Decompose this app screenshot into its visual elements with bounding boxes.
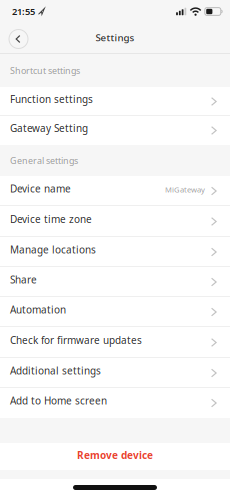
- staticText: Add to Home screen: [10, 394, 107, 407]
- button[interactable]: Function settings: [0, 87, 230, 116]
- button[interactable]: Back: [8, 28, 29, 49]
- button[interactable]: Manage locations: [0, 237, 230, 267]
- button[interactable]: Automation: [0, 297, 230, 327]
- staticText: Additional settings: [10, 364, 101, 377]
- staticText: Device time zone: [10, 212, 92, 226]
- staticText: 21:55: [12, 5, 35, 18]
- staticText: Remove device: [77, 448, 153, 462]
- button[interactable]: Check for firmware updates: [0, 327, 230, 358]
- button[interactable]: Gateway Setting: [0, 116, 230, 145]
- staticText: Settings: [95, 31, 134, 44]
- staticText: MiGateway: [165, 184, 205, 195]
- staticText: Check for firmware updates: [10, 333, 142, 347]
- staticText: Automation: [10, 303, 66, 316]
- staticText: Function settings: [10, 92, 93, 106]
- staticText: Share: [10, 273, 37, 286]
- staticText: Manage locations: [10, 243, 96, 256]
- button[interactable]: Device time zone: [0, 206, 230, 237]
- button[interactable]: Device name: [0, 176, 230, 206]
- button[interactable]: Share: [0, 267, 230, 297]
- button[interactable]: Additional settings: [0, 358, 230, 388]
- staticText: Shortcut settings: [10, 64, 80, 77]
- staticText: Gateway Setting: [10, 121, 88, 135]
- button[interactable]: Add to Home screen: [0, 388, 230, 418]
- button[interactable]: Remove device: [0, 443, 230, 470]
- staticText: General settings: [10, 154, 78, 167]
- staticText: Device name: [10, 182, 71, 195]
